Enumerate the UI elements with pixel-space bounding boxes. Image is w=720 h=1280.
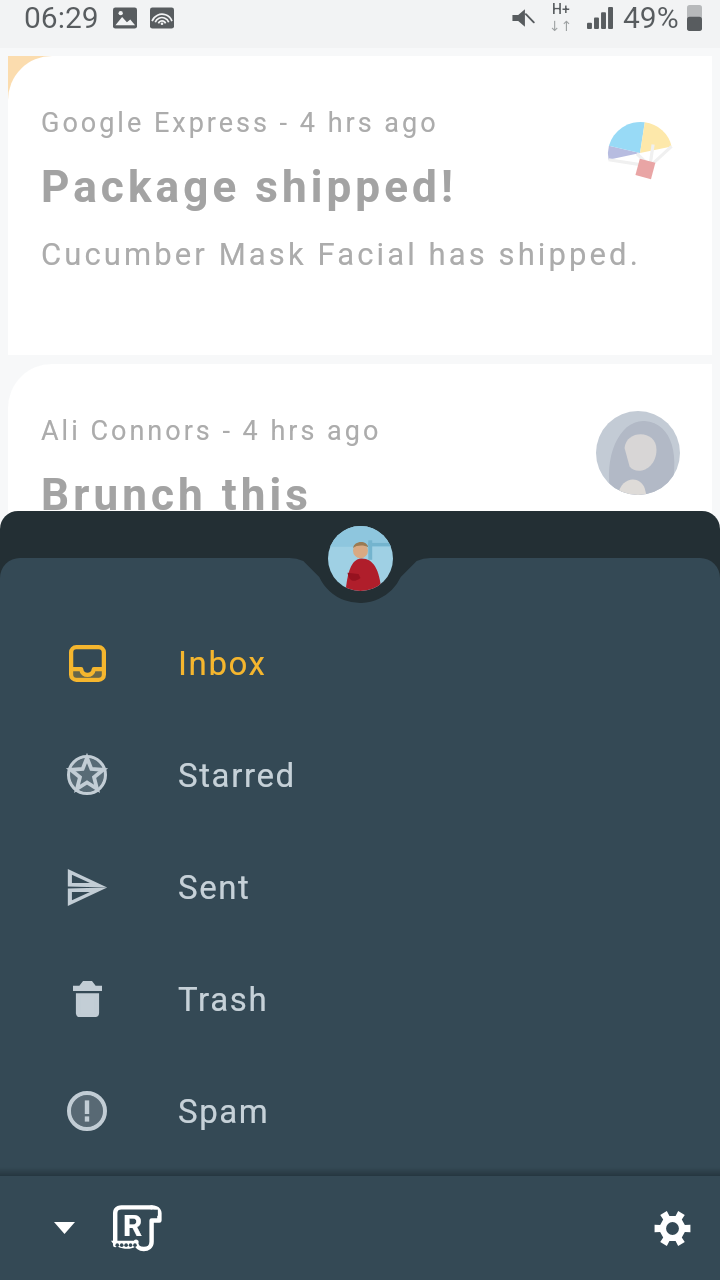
button[interactable]: Google Express - 4 hrs ago [8, 56, 712, 355]
button[interactable]: Spam [0, 1055, 720, 1167]
staticText: Brunch this [41, 469, 312, 521]
staticText: Package shipped! [41, 161, 457, 213]
button[interactable]: Collapse drawer [8, 1176, 120, 1280]
staticText: Trash [178, 980, 269, 1019]
button[interactable]: Ali Connors - 4 hrs ago [8, 364, 712, 663]
staticText: H+ [552, 1, 570, 17]
staticText: Starred [178, 756, 296, 795]
staticText: Cucumber Mask Facial has shipped. [41, 236, 641, 272]
staticText: Inbox [178, 644, 267, 683]
staticText: Google Express - 4 hrs ago [41, 107, 439, 139]
button[interactable]: Sent [0, 831, 720, 943]
staticText: 06:29 [24, 0, 99, 35]
button[interactable]: Reply [92, 1176, 180, 1280]
button[interactable]: Inbox [0, 607, 720, 719]
staticText: Sent [178, 868, 251, 907]
staticText: Spam [178, 1092, 270, 1131]
button[interactable]: Starred [0, 719, 720, 831]
button[interactable]: Trash [0, 943, 720, 1055]
staticText: R [123, 1208, 143, 1243]
staticText: 49% [623, 0, 679, 35]
staticText: ↓↑ [549, 18, 573, 34]
staticText: Ali Connors - 4 hrs ago [41, 415, 382, 447]
button[interactable]: Settings [624, 1176, 720, 1280]
button[interactable]: Account [328, 526, 393, 591]
